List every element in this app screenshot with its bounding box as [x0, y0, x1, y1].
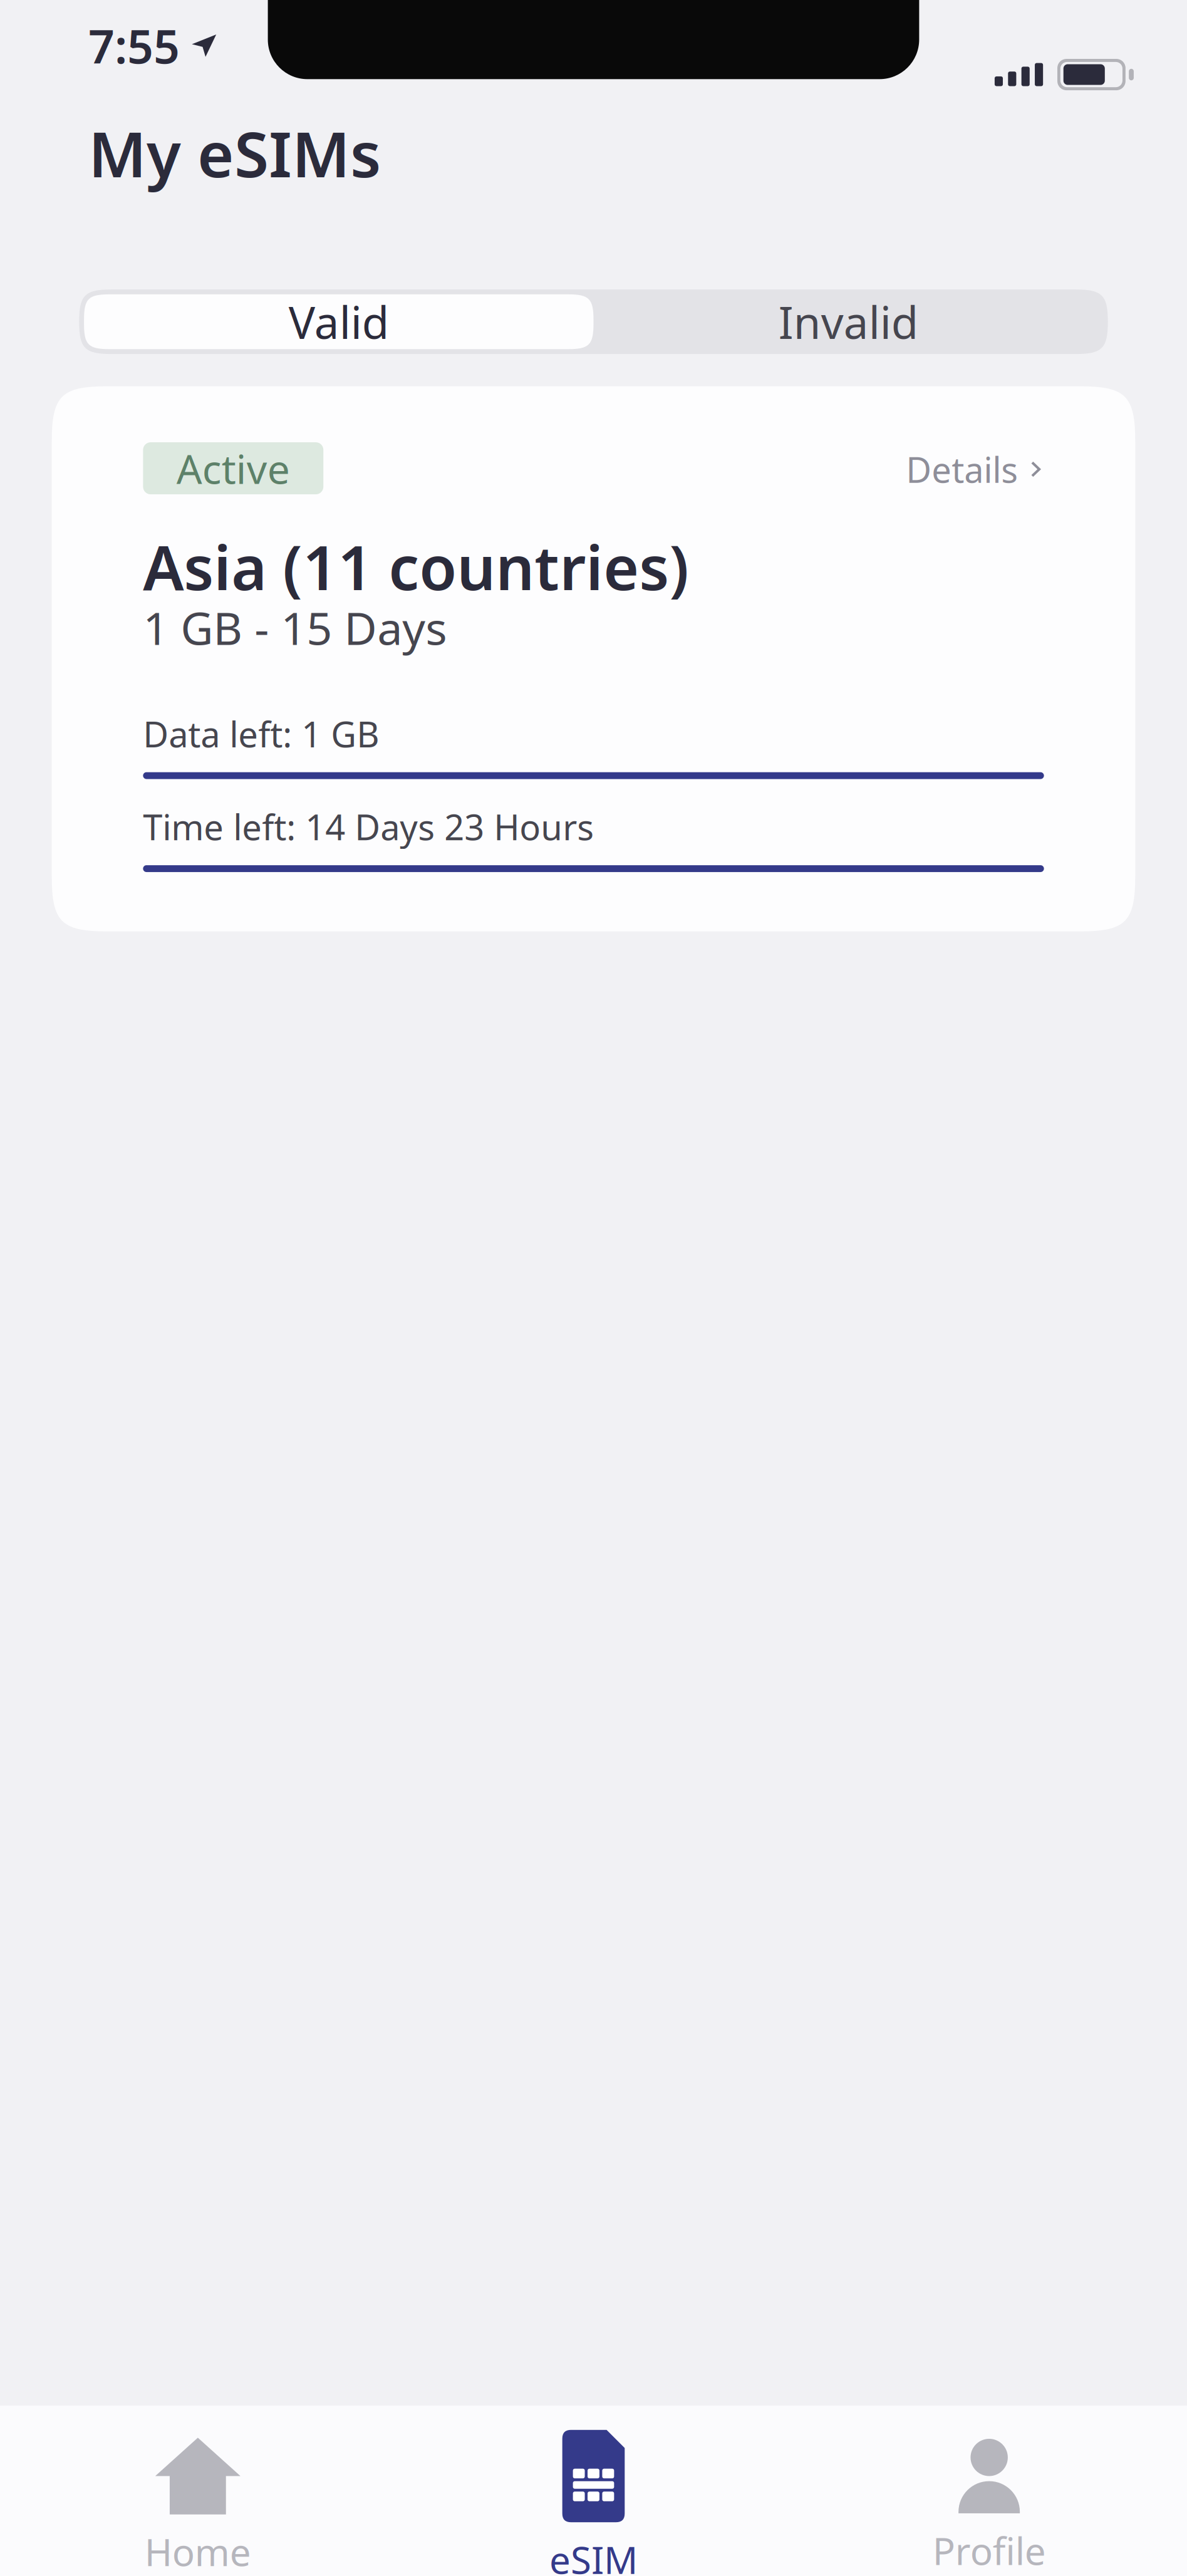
staticText: eSIM — [549, 2534, 638, 2576]
button[interactable]: eSIM — [396, 2430, 791, 2576]
button[interactable]: Invalid — [593, 294, 1103, 349]
button[interactable]: Valid — [84, 294, 593, 349]
staticText: Active — [177, 442, 290, 495]
staticText: Data left: 1 GB — [143, 710, 379, 757]
staticText: 7:55 — [88, 15, 180, 76]
staticText: Invalid — [778, 292, 918, 351]
staticText: Asia (11 countries) — [143, 526, 689, 607]
button[interactable]: Profile — [791, 2439, 1187, 2575]
staticText: Time left: 14 Days 23 Hours — [143, 803, 594, 850]
button[interactable]: Home — [0, 2438, 396, 2576]
staticText: Details — [906, 446, 1018, 493]
staticText: Valid — [289, 292, 389, 351]
staticText: My eSIMs — [88, 111, 381, 195]
staticText: Home — [145, 2527, 251, 2576]
staticText: Profile — [932, 2526, 1046, 2575]
button[interactable]: Details — [906, 428, 1044, 493]
staticText: 1 GB - 15 Days — [143, 598, 447, 657]
